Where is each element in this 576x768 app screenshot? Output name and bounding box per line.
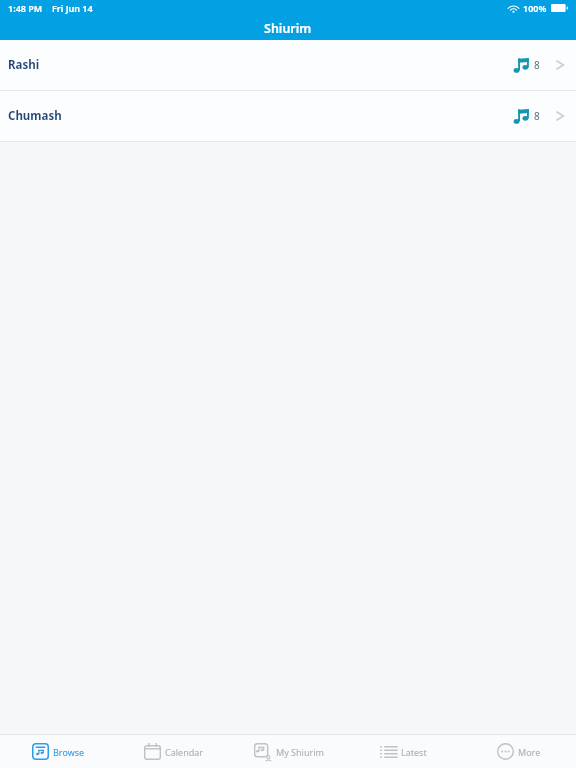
staticText: My Shiurim (276, 746, 324, 758)
button[interactable]: Rashi (0, 40, 576, 90)
staticText: Latest (401, 746, 427, 758)
staticText: 8 (534, 58, 540, 72)
staticText: More (518, 746, 541, 758)
button[interactable]: My Shiurim (231, 735, 346, 768)
staticText: Fri Jun 14 (52, 2, 93, 14)
staticText: 8 (534, 109, 540, 123)
staticText: 1:48 PM (8, 2, 43, 14)
staticText: Browse (53, 746, 85, 758)
button[interactable]: Browse (0, 735, 116, 768)
staticText: Shiurim (264, 20, 312, 37)
staticText: 100% (523, 2, 547, 14)
button[interactable]: Chumash (0, 91, 576, 141)
staticText: Rashi (8, 57, 40, 73)
staticText: Calendar (165, 746, 203, 758)
button[interactable]: Latest (346, 735, 461, 768)
button[interactable]: More (461, 735, 576, 768)
staticText: Chumash (8, 108, 62, 124)
button[interactable]: Calendar (116, 735, 231, 768)
